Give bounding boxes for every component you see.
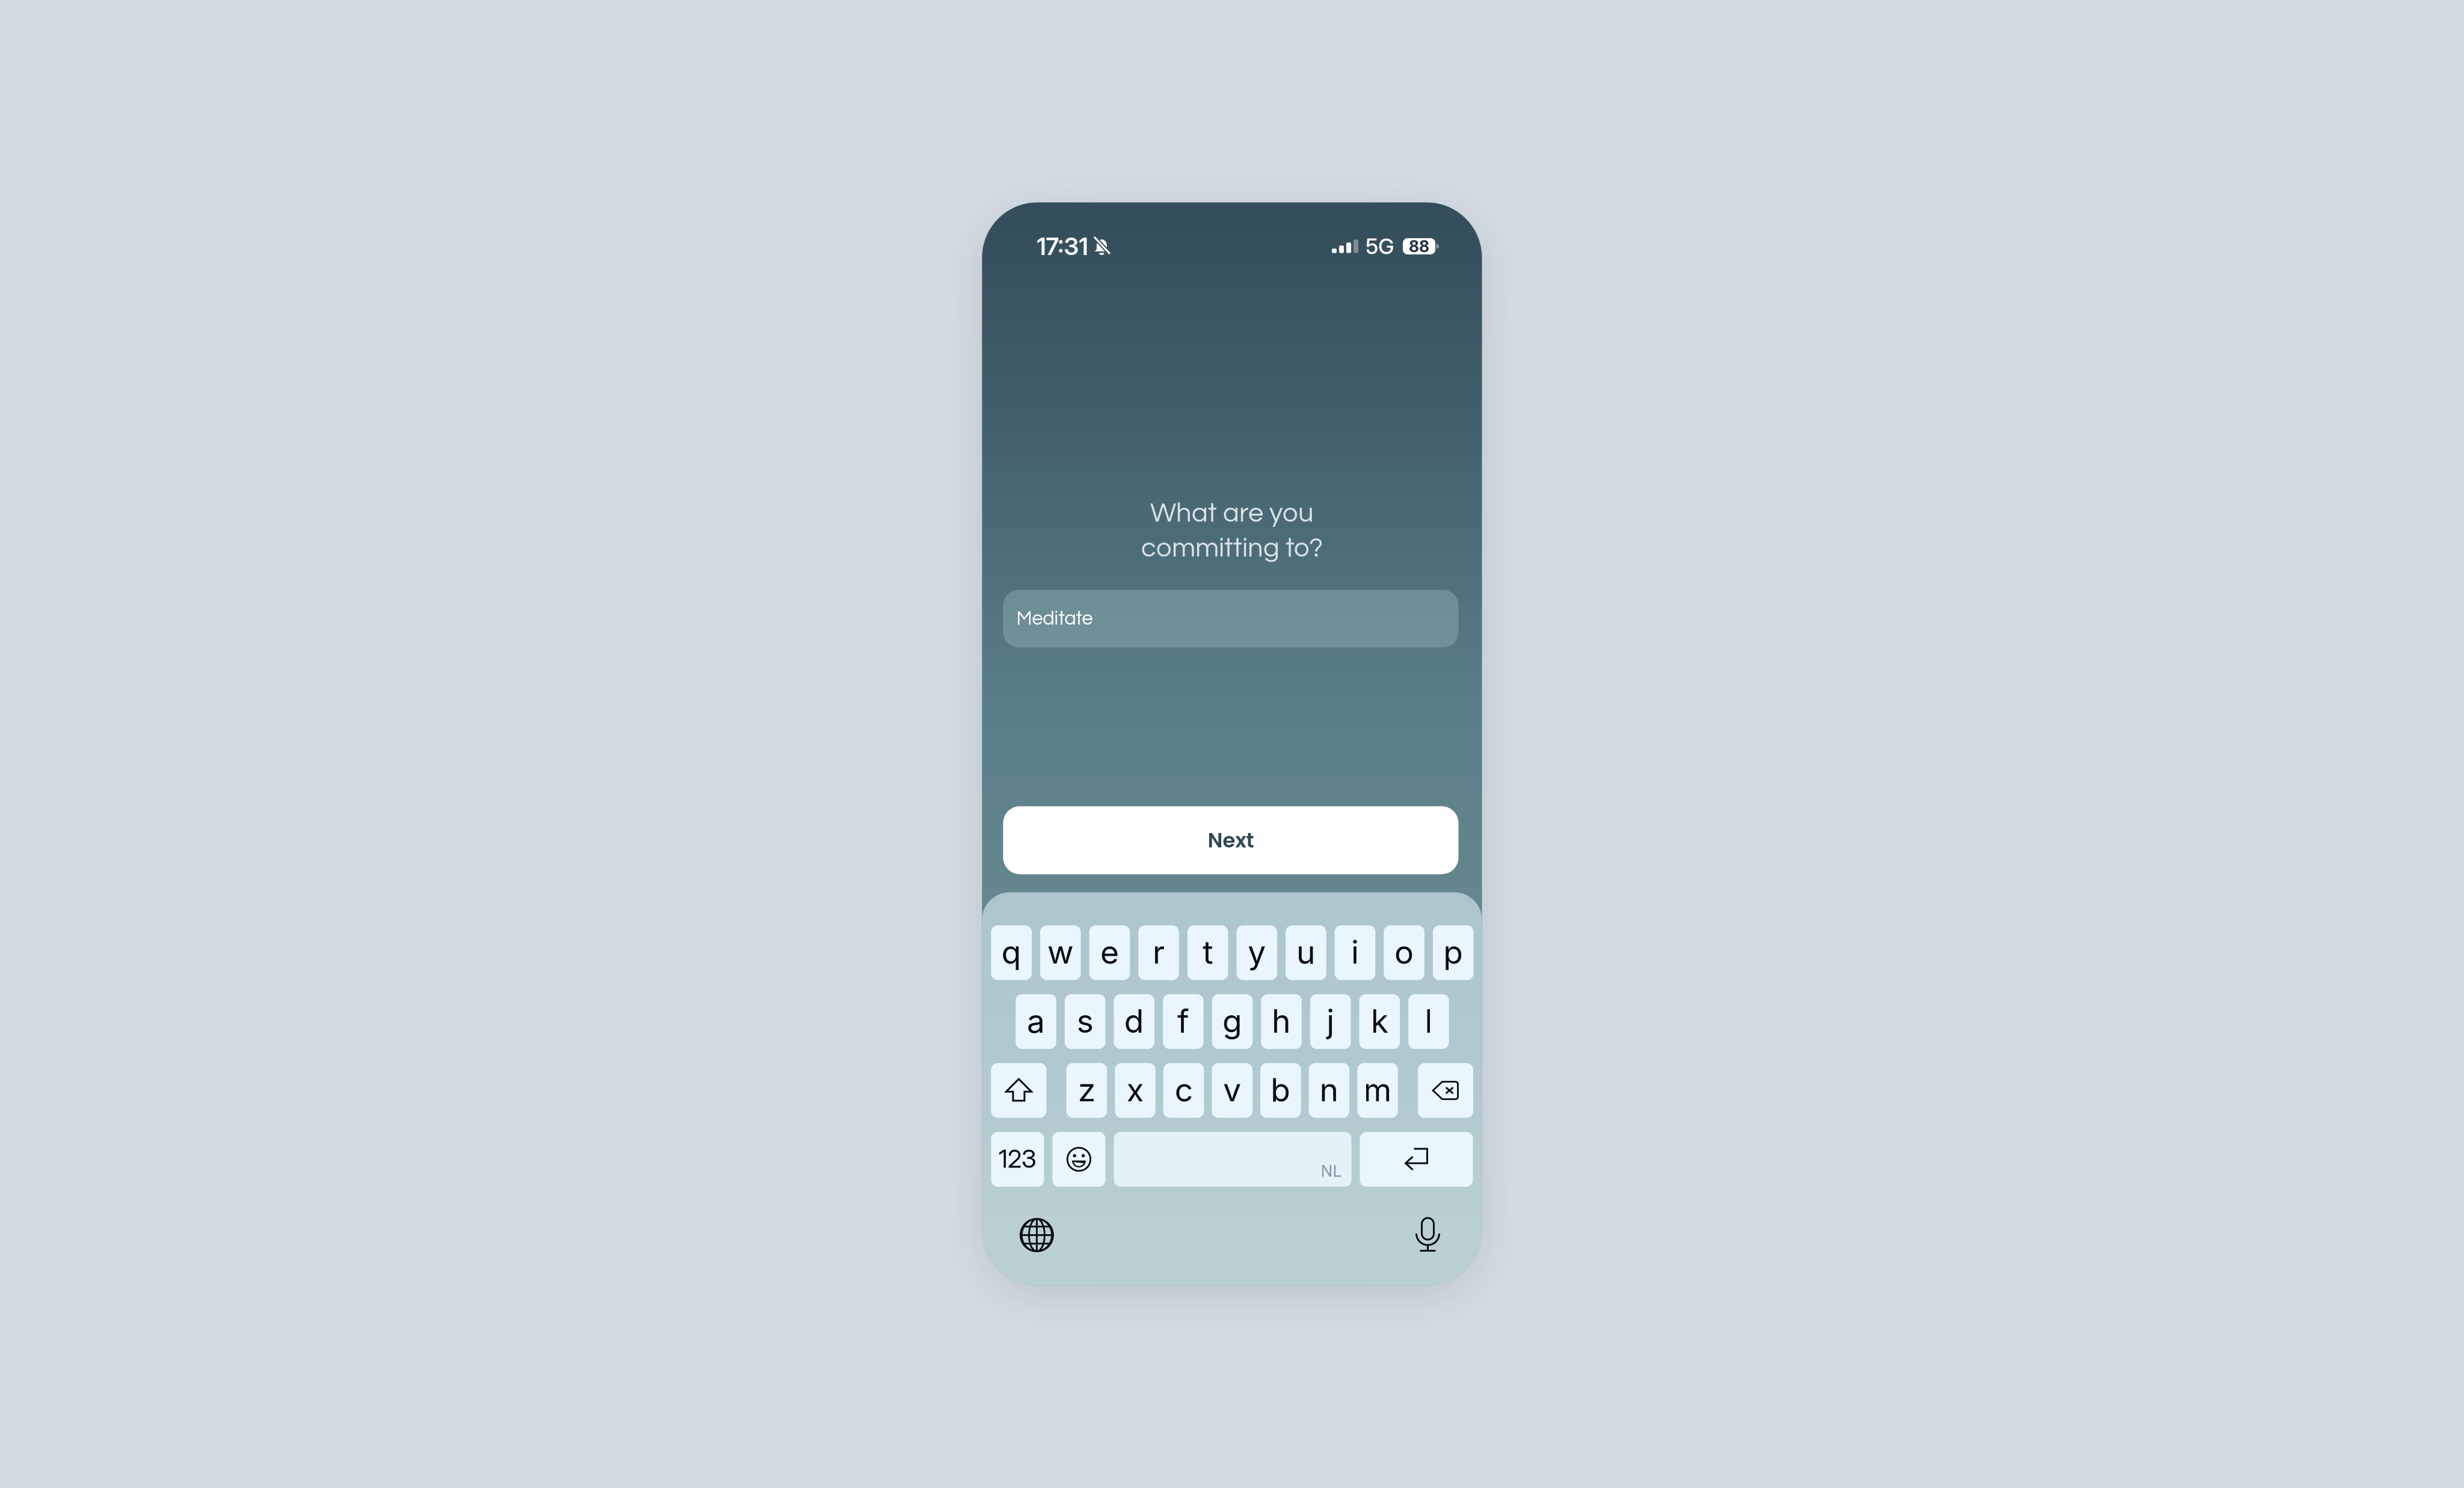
staticText: b [1271,1070,1291,1109]
staticText: i [1351,933,1359,971]
staticText: s [1077,1002,1093,1040]
button[interactable]: n [1309,1063,1349,1118]
button[interactable]: s [1065,994,1105,1049]
button[interactable]: h [1261,994,1302,1049]
staticText: j [1327,1002,1334,1040]
button[interactable]: 123 [991,1132,1044,1187]
staticText: q [1001,933,1021,971]
button[interactable]: w [1040,925,1081,980]
button[interactable]: a [1016,994,1056,1049]
staticText: z [1078,1070,1095,1109]
button[interactable]: c [1163,1063,1204,1118]
staticText: f [1177,1002,1189,1040]
button[interactable]: Emoji [1052,1132,1105,1187]
staticText: m [1364,1070,1392,1109]
button[interactable]: o [1384,925,1424,980]
button[interactable]: d [1114,994,1154,1049]
button[interactable]: p [1433,925,1474,980]
button[interactable]: Delete [1418,1063,1473,1118]
button[interactable]: k [1359,994,1400,1049]
button[interactable]: x [1115,1063,1155,1118]
button[interactable]: Dictation [1415,1217,1440,1253]
staticText: o [1394,933,1414,971]
button[interactable]: Shift [991,1063,1046,1118]
staticText: u [1296,933,1316,971]
staticText: 17:31 [1037,232,1088,261]
staticText: 88 [1409,237,1429,256]
button[interactable]: z [1066,1063,1107,1118]
staticText: d [1124,1002,1144,1040]
staticText: 123 [999,1144,1036,1174]
staticText: What are you [1150,499,1314,527]
staticText: h [1272,1002,1291,1040]
staticText: e [1100,933,1119,971]
staticText: k [1371,1002,1388,1040]
staticText: committing to? [1141,534,1323,562]
staticText: v [1223,1070,1241,1109]
button[interactable]: i [1335,925,1375,980]
staticText: c [1175,1070,1193,1109]
button[interactable]: m [1357,1063,1398,1118]
button[interactable]: b [1260,1063,1301,1118]
button[interactable]: v [1212,1063,1253,1118]
staticText: w [1047,933,1074,971]
button[interactable]: Space [1114,1132,1351,1187]
staticText: 5G [1366,233,1394,259]
button[interactable]: q [991,925,1032,980]
staticText: t [1203,933,1213,971]
button[interactable]: e [1089,925,1130,980]
button[interactable]: Next [1003,806,1458,874]
staticText: y [1248,933,1266,971]
staticText: l [1425,1002,1433,1040]
button[interactable]: Meditate [1003,590,1458,647]
button[interactable]: r [1138,925,1179,980]
button[interactable]: j [1310,994,1351,1049]
staticText: n [1320,1070,1339,1109]
staticText: g [1222,1002,1242,1040]
button[interactable]: l [1408,994,1449,1049]
staticText: Meditate [1016,608,1093,629]
staticText: x [1126,1070,1144,1109]
button[interactable]: t [1187,925,1228,980]
button[interactable]: Return [1360,1132,1473,1187]
staticText: NL [1321,1161,1342,1181]
button[interactable]: y [1237,925,1277,980]
button[interactable]: f [1163,994,1204,1049]
button[interactable]: u [1286,925,1326,980]
button[interactable]: Next keyboard [1019,1218,1054,1253]
staticText: p [1443,933,1463,971]
button[interactable]: g [1212,994,1253,1049]
staticText: r [1153,933,1165,971]
staticText: Next [1208,826,1254,855]
staticText: a [1027,1002,1045,1040]
